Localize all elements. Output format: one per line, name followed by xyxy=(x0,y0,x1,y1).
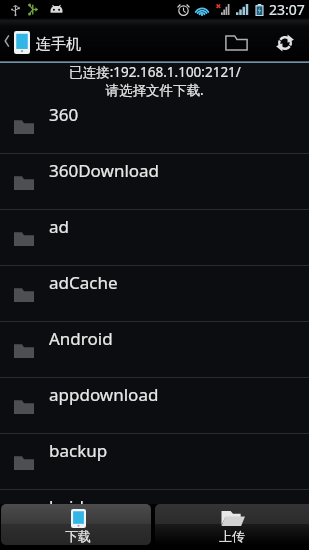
staticText: appdownload xyxy=(49,383,159,406)
button[interactable]: backup xyxy=(0,434,309,490)
staticText: baidu xyxy=(49,495,95,504)
button[interactable]: Android xyxy=(0,322,309,378)
button[interactable]: appdownload xyxy=(0,378,309,434)
staticText: 360 xyxy=(49,103,79,126)
staticText: 请选择文件下载. xyxy=(105,81,204,98)
staticText: 已连接:192.168.1.100:2121/ xyxy=(69,63,241,81)
staticText: backup xyxy=(49,439,108,462)
staticText: 上传 xyxy=(219,528,245,544)
staticText: Android xyxy=(49,327,113,350)
button[interactable]: ad xyxy=(0,210,309,266)
button[interactable]: Refresh xyxy=(261,18,308,61)
button[interactable]: Open folder xyxy=(213,18,260,61)
button[interactable]: 360Download xyxy=(0,154,309,210)
staticText: 360Download xyxy=(49,159,160,182)
staticText: ad xyxy=(49,215,69,238)
button[interactable]: 上传 xyxy=(155,504,309,545)
staticText: adCache xyxy=(49,271,118,294)
button[interactable]: baidu xyxy=(0,490,309,504)
staticText: 连手机 xyxy=(36,35,81,54)
button[interactable]: 连手机 xyxy=(0,18,100,61)
staticText: 下载 xyxy=(65,528,91,544)
staticText: 23:07 xyxy=(269,0,305,18)
button[interactable]: 360 xyxy=(0,98,309,154)
button[interactable]: 下载 xyxy=(1,504,151,545)
button[interactable]: adCache xyxy=(0,266,309,322)
